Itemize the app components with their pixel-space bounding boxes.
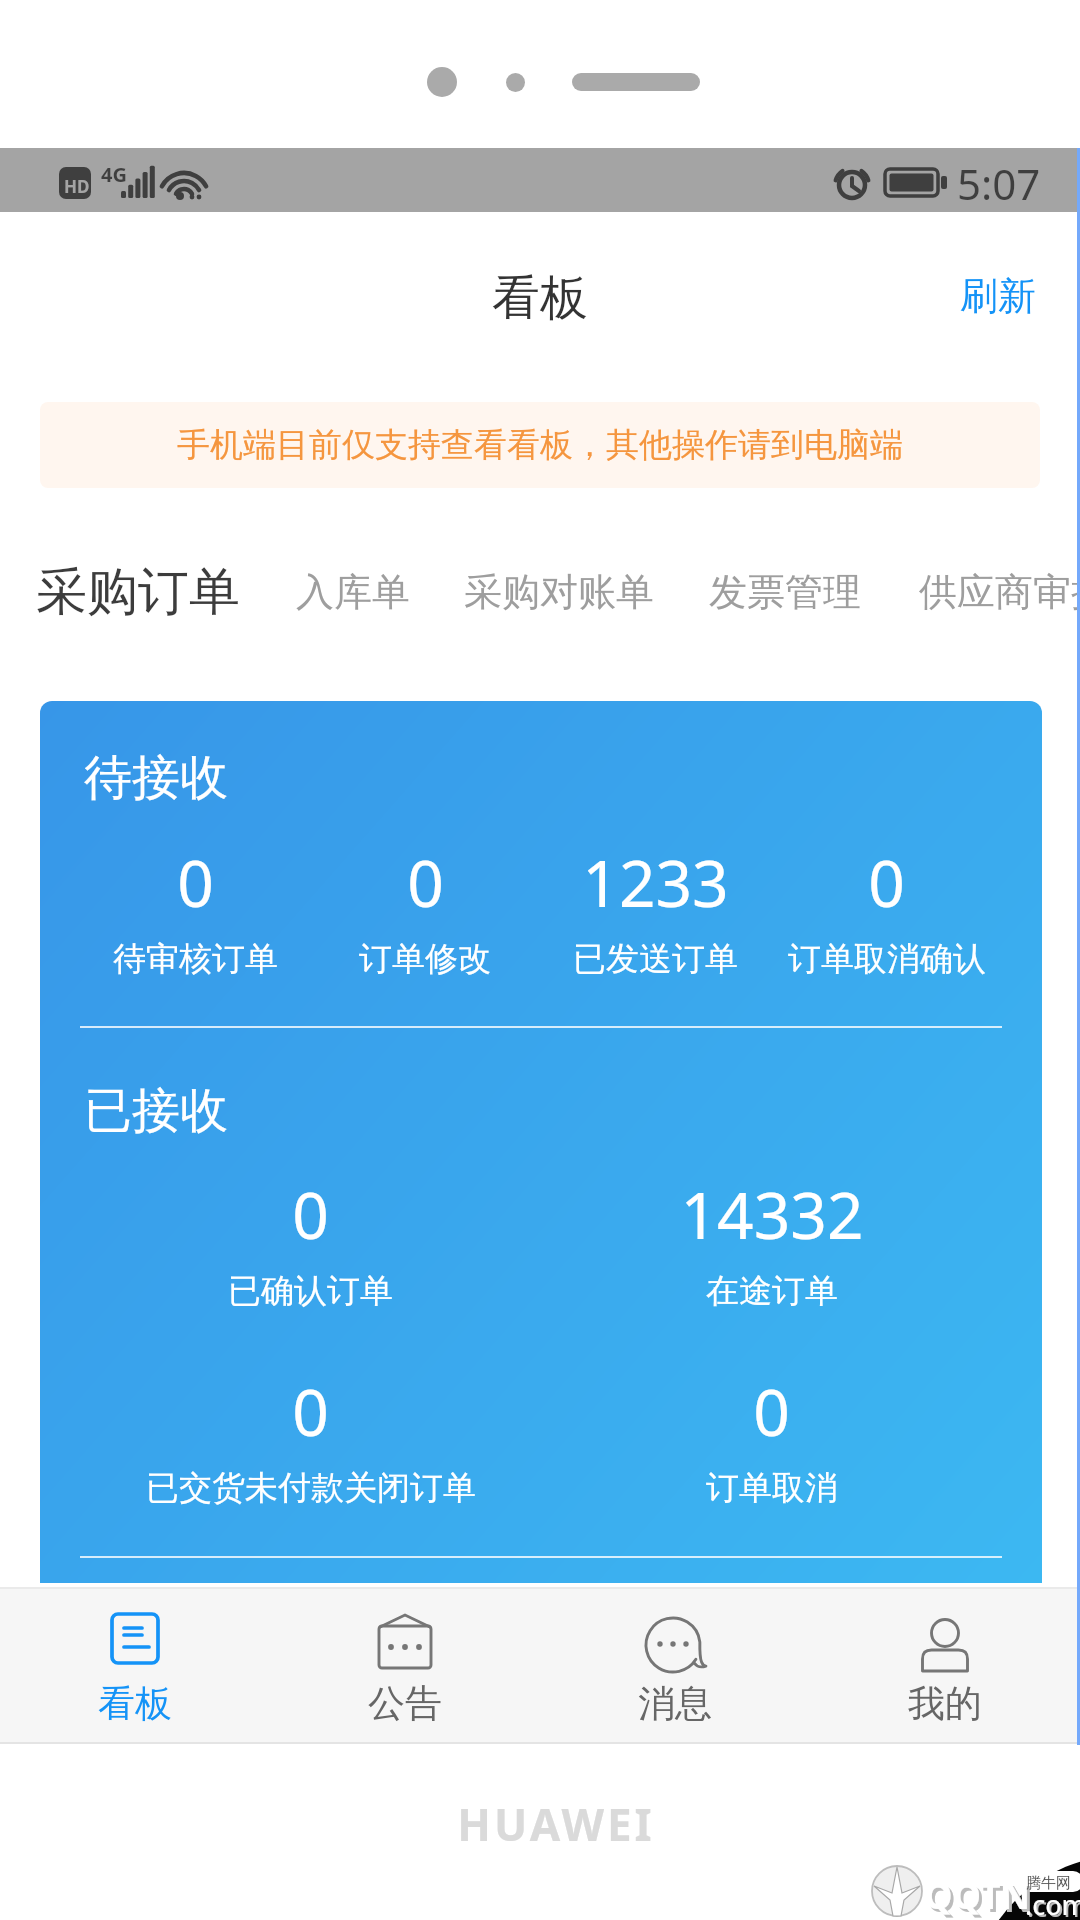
- staticText: 5:07: [957, 155, 1041, 212]
- staticText: 在途订单: [706, 1270, 838, 1312]
- button[interactable]: 供应商审批: [890, 540, 1080, 644]
- button[interactable]: 采购订单: [8, 540, 268, 644]
- staticText: 0: [868, 839, 905, 926]
- staticText: 公告: [368, 1680, 442, 1727]
- staticText: 发票管理: [709, 568, 861, 616]
- staticText: 0: [753, 1368, 790, 1455]
- button[interactable]: 发票管理: [680, 540, 890, 644]
- staticText: QQTN: [927, 1874, 1033, 1920]
- staticText: .com: [1025, 1886, 1080, 1920]
- button[interactable]: 0: [310, 839, 540, 980]
- button[interactable]: 14332: [541, 1171, 1002, 1312]
- staticText: 订单取消确认: [788, 938, 986, 980]
- staticText: 腾牛网: [1026, 1874, 1071, 1893]
- staticText: 订单修改: [359, 938, 491, 980]
- button[interactable]: 0: [541, 1368, 1002, 1509]
- staticText: 刷新: [960, 272, 1036, 320]
- staticText: 待接收: [84, 748, 228, 808]
- staticText: 0: [177, 839, 214, 926]
- staticText: 4G: [101, 161, 127, 188]
- staticText: HUAWEI: [16, 1794, 1080, 1854]
- button[interactable]: 看板: [0, 1587, 270, 1744]
- staticText: 0: [292, 1368, 329, 1455]
- staticText: 入库单: [296, 568, 410, 616]
- staticText: 我的: [908, 1680, 982, 1727]
- staticText: .com: [1027, 1888, 1080, 1920]
- staticText: 14332: [680, 1171, 864, 1258]
- staticText: 看板: [98, 1680, 172, 1727]
- staticText: 已交货未付款关闭订单: [146, 1467, 476, 1509]
- staticText: 0: [292, 1171, 329, 1258]
- button[interactable]: 刷新: [930, 250, 1066, 342]
- staticText: 手机端目前仅支持查看看板，其他操作请到电脑端: [177, 424, 903, 466]
- staticText: 供应商审批: [919, 568, 1080, 616]
- button[interactable]: 0: [80, 839, 310, 980]
- staticText: 待审核订单: [113, 938, 278, 980]
- button[interactable]: 公告: [270, 1587, 540, 1744]
- button[interactable]: 入库单: [268, 540, 438, 644]
- button[interactable]: 0: [80, 1368, 541, 1509]
- button[interactable]: 我的: [810, 1587, 1080, 1744]
- staticText: HD: [64, 175, 90, 198]
- staticText: 1233: [582, 839, 729, 926]
- staticText: QQTN: [924, 1871, 1030, 1920]
- staticText: 已发送订单: [573, 938, 738, 980]
- button[interactable]: 采购对账单: [438, 540, 680, 644]
- staticText: 看板: [0, 268, 1080, 328]
- staticText: 采购对账单: [464, 568, 654, 616]
- button[interactable]: 0: [771, 839, 1002, 980]
- staticText: 0: [407, 839, 444, 926]
- button[interactable]: 1233: [540, 839, 771, 980]
- button[interactable]: 0: [80, 1171, 541, 1312]
- staticText: 采购订单: [36, 560, 240, 624]
- button[interactable]: 消息: [540, 1587, 810, 1744]
- staticText: 已确认订单: [228, 1270, 393, 1312]
- staticText: 订单取消: [706, 1467, 838, 1509]
- staticText: 已接收: [84, 1081, 228, 1141]
- staticText: 消息: [638, 1680, 712, 1727]
